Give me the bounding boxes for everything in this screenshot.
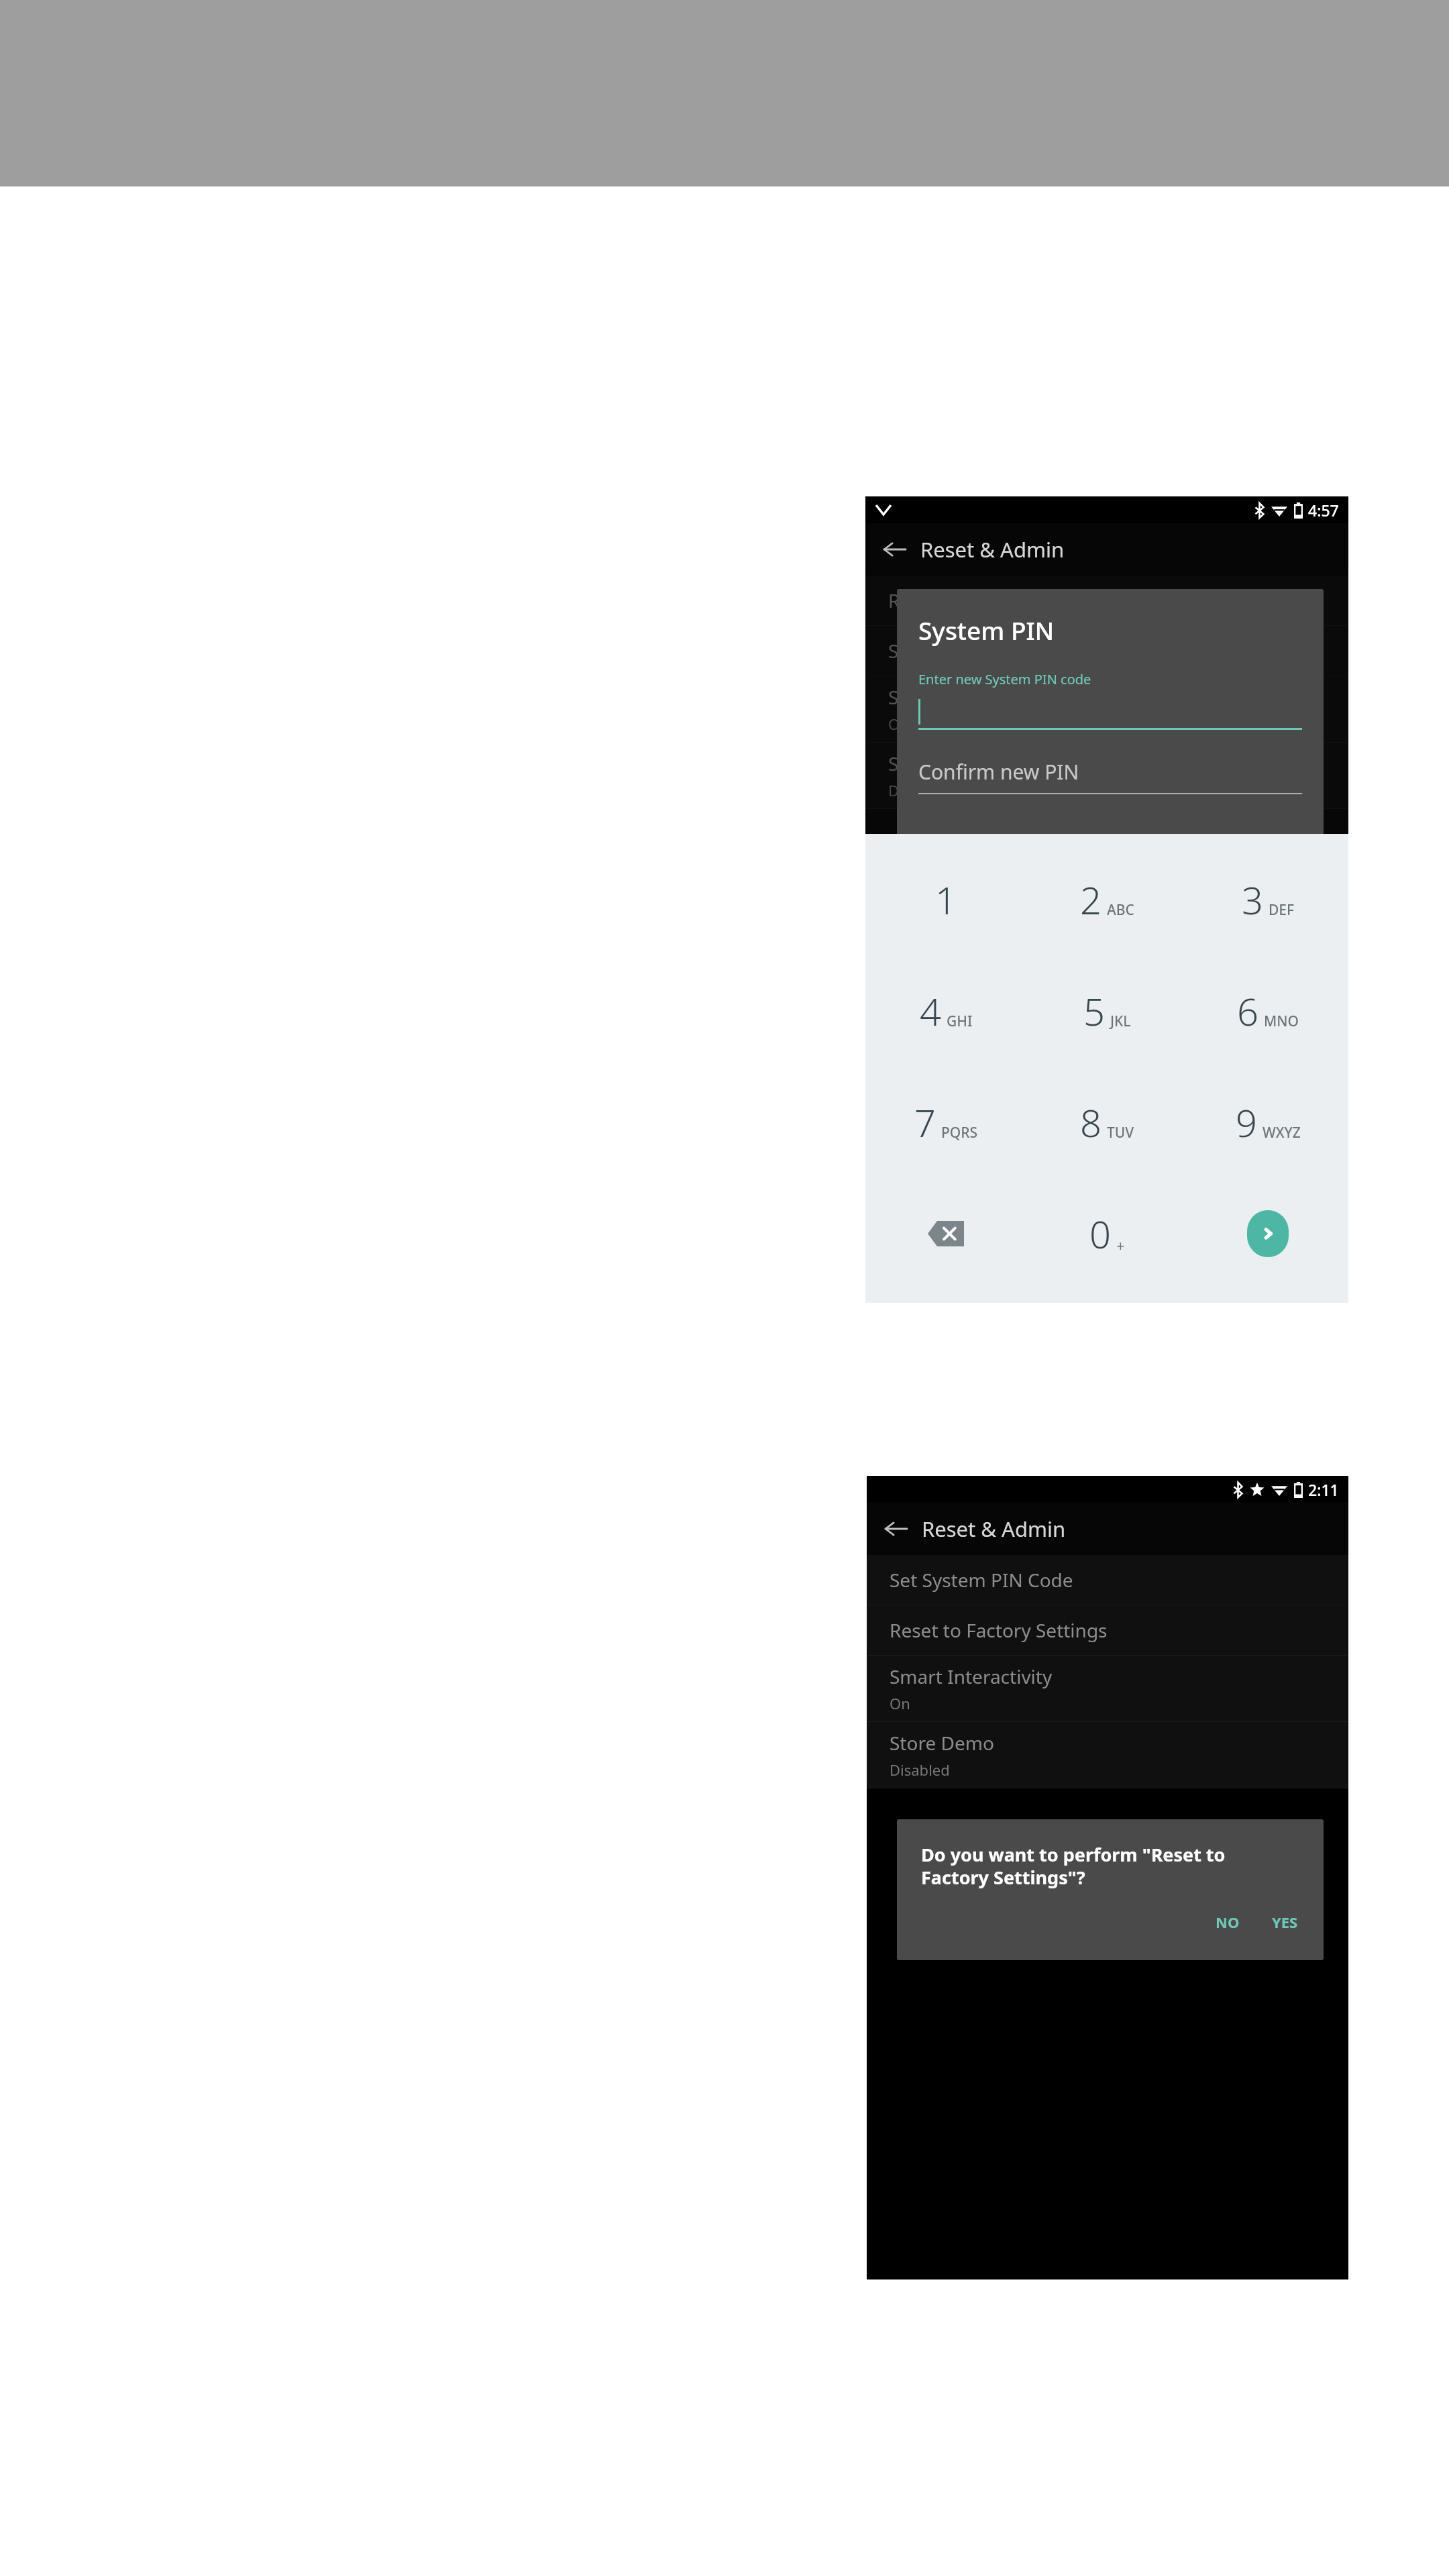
button[interactable]: 3 bbox=[1187, 843, 1348, 955]
staticText: 8 bbox=[1080, 1097, 1102, 1148]
button[interactable]: 2 bbox=[1026, 843, 1187, 955]
staticText: Enter new System PIN code bbox=[918, 670, 1091, 688]
button[interactable]: Store Demo bbox=[867, 1722, 1348, 1788]
staticText: DEF bbox=[1269, 900, 1295, 920]
staticText: System PIN bbox=[918, 613, 1055, 647]
staticText: 2 bbox=[1080, 874, 1102, 925]
staticText: Disabled bbox=[888, 780, 949, 800]
staticText: 2:11 bbox=[1308, 1479, 1339, 1500]
staticText: 6 bbox=[1237, 985, 1258, 1036]
staticText: PQRS bbox=[941, 1123, 978, 1142]
staticText: TUV bbox=[1107, 1123, 1134, 1142]
staticText: On bbox=[888, 714, 909, 734]
staticText: JKL bbox=[1110, 1012, 1131, 1031]
button[interactable]: Reset to Factory Settings bbox=[865, 576, 1348, 626]
staticText: ABC bbox=[1107, 900, 1134, 920]
staticText: 9 bbox=[1236, 1097, 1257, 1148]
button[interactable]: Enter bbox=[1247, 1210, 1289, 1257]
staticText: 7 bbox=[914, 1097, 936, 1148]
button[interactable]: Set System PIN Code bbox=[867, 1555, 1348, 1605]
button[interactable]: 4 bbox=[865, 955, 1026, 1067]
button[interactable]: Back bbox=[867, 1503, 1348, 1555]
staticText: Confirm new PIN bbox=[918, 758, 1079, 786]
staticText: Reset & Admin bbox=[922, 1515, 1066, 1543]
button[interactable]: CANCEL bbox=[1167, 822, 1238, 847]
staticText: Set System PIN Code bbox=[888, 638, 1072, 663]
button[interactable]: SAVE bbox=[1255, 822, 1305, 847]
staticText: MNO bbox=[1264, 1012, 1299, 1031]
button[interactable]: 1 bbox=[865, 843, 1026, 955]
button[interactable]: Reset to Factory Settings bbox=[867, 1605, 1348, 1656]
staticText: 3 bbox=[1242, 874, 1263, 925]
button[interactable]: YES bbox=[1265, 1907, 1305, 1937]
button[interactable]: Back bbox=[880, 535, 910, 564]
staticText: 1 bbox=[935, 874, 957, 925]
button[interactable]: NO bbox=[1209, 1907, 1246, 1937]
button[interactable]: 6 bbox=[1187, 955, 1348, 1067]
staticText: Store Demo bbox=[888, 751, 993, 776]
staticText: Smart Interactivity bbox=[890, 1664, 1053, 1689]
staticText: GHI bbox=[947, 1012, 973, 1031]
button[interactable]: 9 bbox=[1187, 1067, 1348, 1178]
staticText: Store Demo bbox=[890, 1730, 994, 1756]
staticText: Do you want to perform "Reset to Factory… bbox=[921, 1842, 1294, 1890]
button[interactable]: Smart Interactivity bbox=[867, 1656, 1348, 1722]
staticText: Reset to Factory Settings bbox=[890, 1617, 1108, 1643]
button[interactable]: Set System PIN Code bbox=[865, 626, 1348, 676]
button[interactable]: 7 bbox=[865, 1067, 1026, 1178]
button[interactable]: Backspace bbox=[865, 1178, 1026, 1289]
staticText: On bbox=[890, 1693, 910, 1713]
staticText: Reset to Factory Settings bbox=[888, 588, 1106, 613]
staticText: CANCEL bbox=[1173, 828, 1231, 842]
staticText: YES bbox=[1272, 1912, 1298, 1932]
staticText: Disabled bbox=[890, 1760, 950, 1780]
staticText: + bbox=[1116, 1235, 1125, 1255]
button[interactable]: Back bbox=[865, 523, 1348, 576]
staticText: Set System PIN Code bbox=[890, 1567, 1073, 1593]
staticText: 4 bbox=[920, 985, 941, 1036]
staticText: SAVE bbox=[1262, 828, 1298, 842]
staticText: 0 bbox=[1089, 1208, 1111, 1259]
button[interactable]: Back bbox=[881, 1514, 911, 1544]
button[interactable]: Store Demo bbox=[865, 743, 1348, 809]
button[interactable]: 8 bbox=[1026, 1067, 1187, 1178]
staticText: Smart Interactivity bbox=[888, 684, 1051, 710]
button[interactable]: 0 bbox=[1026, 1178, 1187, 1289]
staticText: 5 bbox=[1083, 985, 1105, 1036]
staticText: Reset & Admin bbox=[920, 535, 1065, 563]
staticText: WXYZ bbox=[1263, 1123, 1301, 1142]
staticText: 4:57 bbox=[1308, 500, 1339, 521]
button[interactable]: Smart Interactivity bbox=[865, 676, 1348, 743]
button[interactable]: 5 bbox=[1026, 955, 1187, 1067]
staticText: NO bbox=[1216, 1912, 1240, 1932]
